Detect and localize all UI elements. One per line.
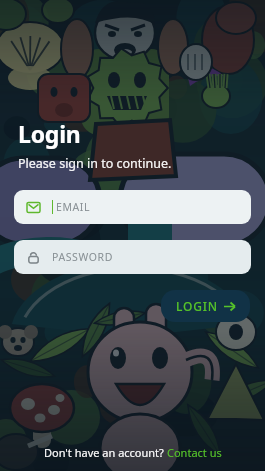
button[interactable]: Don't have an account? [0,445,265,471]
staticText: Login [18,118,81,149]
staticText: EMAIL [56,200,91,214]
button[interactable]: LOGIN [161,290,250,322]
button[interactable]: Email [14,190,251,224]
staticText: Contact us [167,445,222,460]
staticText: Please sign in to continue. [18,155,172,172]
staticText: Don't have an account? [44,445,167,460]
staticText: LOGIN [176,298,218,314]
button[interactable]: Password [14,240,251,274]
staticText: PASSWORD [52,250,113,264]
